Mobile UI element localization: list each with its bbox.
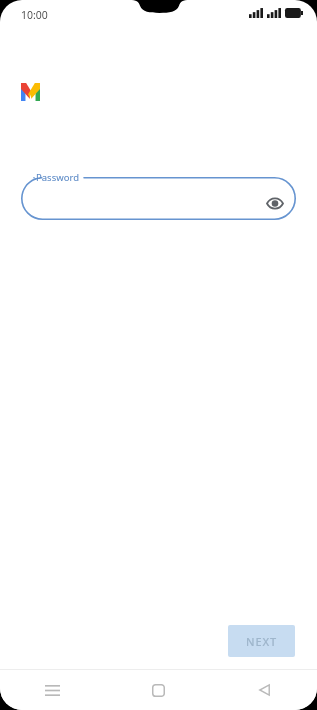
staticText: 10:00	[21, 8, 48, 22]
button[interactable]: Show password	[262, 190, 288, 216]
staticText: Password	[36, 171, 79, 184]
button[interactable]: Back	[211, 670, 317, 710]
button[interactable]: NEXT	[228, 625, 295, 657]
button[interactable]: Password	[21, 168, 296, 220]
button[interactable]: Home	[105, 670, 211, 710]
button[interactable]: Recent apps	[0, 670, 105, 710]
staticText: NEXT	[246, 634, 277, 649]
